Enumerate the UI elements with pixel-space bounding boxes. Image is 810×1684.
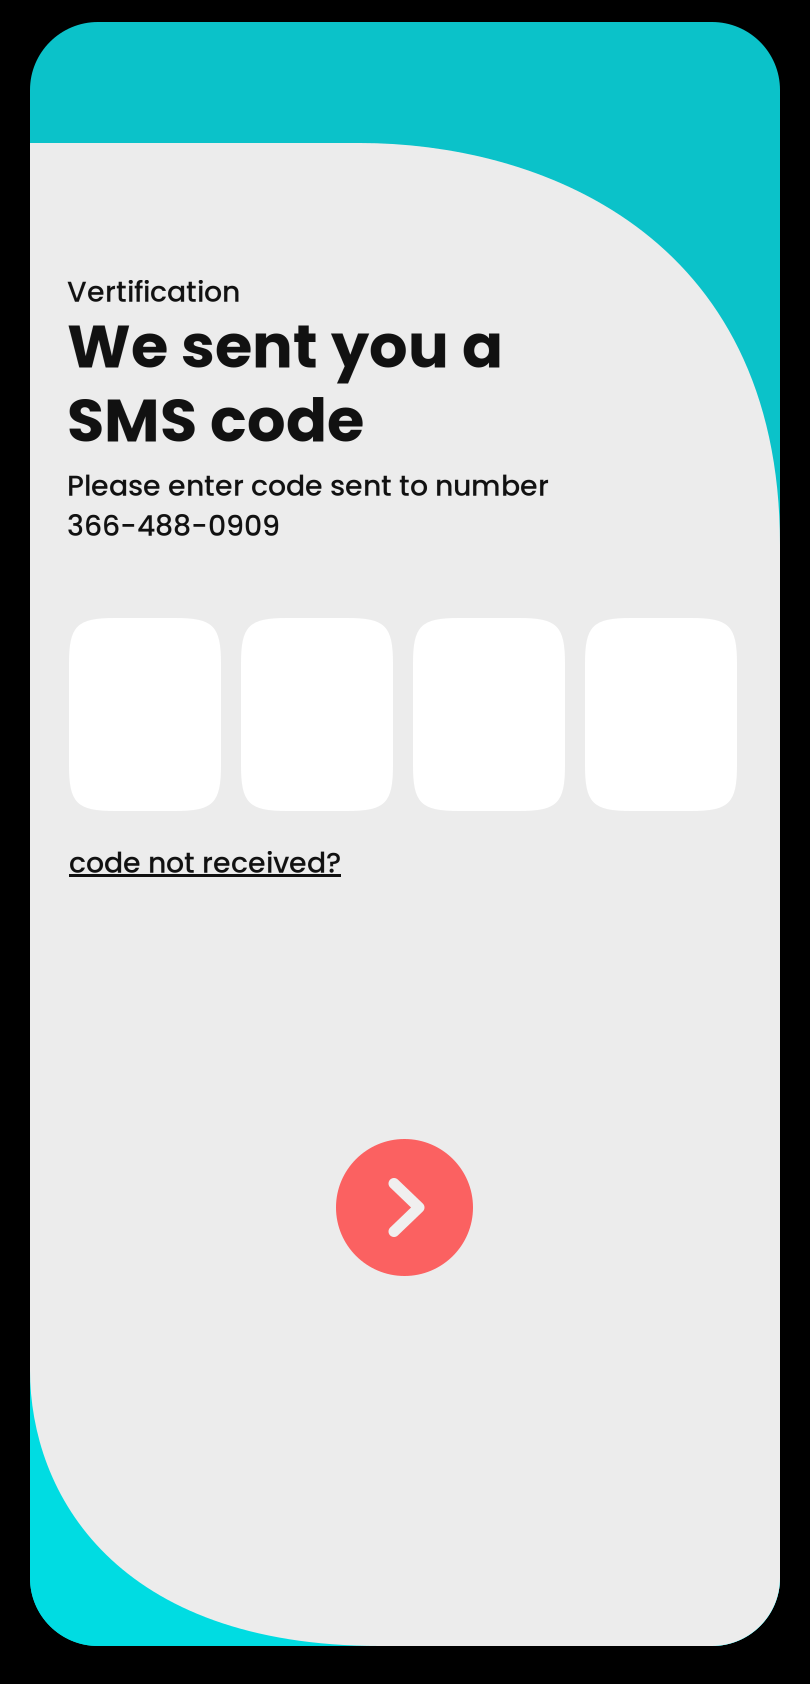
staticText: SMS code	[67, 378, 364, 463]
staticText: We sent you a	[67, 304, 503, 389]
staticText: 366-488-0909	[67, 506, 280, 546]
button[interactable]: code not received?	[69, 843, 369, 885]
staticText: code not received?	[69, 843, 341, 883]
staticText: Vertification	[67, 272, 240, 312]
button[interactable]: Continue	[336, 1139, 473, 1276]
staticText: Please enter code sent to number	[67, 466, 549, 506]
